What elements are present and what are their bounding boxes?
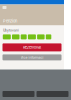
staticText: Ubytovani	[3, 28, 19, 32]
staticText: Penzion	[3, 19, 17, 23]
button[interactable]: Galerie	[2, 91, 34, 97]
staticText: Vice informaci	[20, 55, 43, 59]
button[interactable]: Rezervovat	[2, 43, 61, 51]
button[interactable]: Kontakt	[36, 91, 68, 97]
staticText: Rezervovat	[23, 45, 41, 50]
button[interactable]: Vice informaci	[2, 54, 61, 60]
